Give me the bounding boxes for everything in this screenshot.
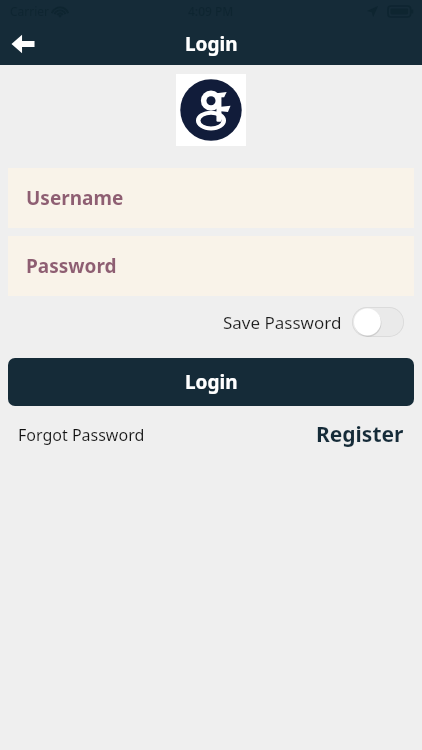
staticText: Login — [185, 31, 238, 57]
button[interactable]: Register — [316, 416, 404, 453]
button[interactable]: Save Password — [223, 307, 404, 337]
staticText: Forgot Password — [18, 424, 145, 446]
button[interactable]: Login — [8, 358, 414, 406]
staticText: Password — [26, 253, 117, 279]
staticText: Save Password — [223, 311, 342, 334]
button[interactable]: Username — [8, 168, 414, 228]
button[interactable]: Password — [8, 236, 414, 296]
staticText: Register — [316, 420, 404, 449]
button[interactable]: Forgot Password — [18, 420, 145, 450]
button[interactable]: Back — [0, 22, 46, 65]
staticText: Username — [26, 185, 124, 211]
staticText: Login — [185, 369, 238, 395]
other: Save Password toggle — [352, 307, 404, 337]
